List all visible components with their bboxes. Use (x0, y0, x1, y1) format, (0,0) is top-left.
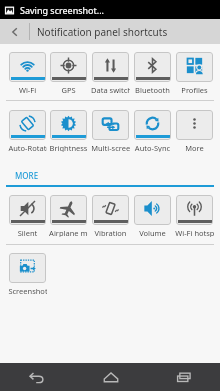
button[interactable]: More (173, 110, 215, 152)
button[interactable]: Airplane mode (48, 195, 89, 237)
staticText: Auto-Sync (133, 143, 172, 152)
button[interactable]: Brightness (48, 110, 89, 152)
staticText: Vibration (91, 228, 130, 237)
button[interactable]: Recents (147, 363, 220, 391)
staticText: GPS (49, 85, 88, 94)
button[interactable]: Bluetooth (131, 52, 173, 94)
button[interactable]: Back (0, 363, 74, 391)
staticText: Airplane mode (49, 228, 88, 237)
button[interactable]: Silent (7, 195, 48, 237)
staticText: MORE (15, 170, 39, 181)
button[interactable]: Data switch (89, 52, 131, 94)
staticText: Data switch (91, 85, 130, 94)
button[interactable]: Auto-Rotate (7, 110, 48, 152)
staticText: Brightness (49, 143, 88, 152)
staticText: Bluetooth (133, 85, 172, 94)
button[interactable]: Multi-screen (89, 110, 131, 152)
staticText: Wi-Fi (8, 85, 47, 94)
staticText: Multi-screen (91, 143, 130, 152)
staticText: Notification panel shortcuts (37, 25, 168, 39)
staticText: More (175, 143, 214, 152)
button[interactable]: Wi-Fi hotspot (173, 195, 215, 237)
staticText: Saving screenshot... (20, 4, 105, 16)
staticText: Screenshot (8, 286, 47, 295)
button[interactable]: Vibration (89, 195, 131, 237)
staticText: Profiles (175, 85, 214, 94)
staticText: Wi-Fi hotspot (175, 228, 214, 237)
button[interactable]: GPS (48, 52, 89, 94)
button[interactable]: Profiles (173, 52, 215, 94)
button[interactable]: Home (74, 363, 147, 391)
staticText: Silent (8, 228, 47, 237)
button[interactable]: Screenshot (7, 253, 48, 295)
button[interactable]: Back (0, 19, 29, 44)
staticText: Auto-Rotate (8, 143, 47, 152)
staticText: Volume (133, 228, 172, 237)
button[interactable]: Wi-Fi (7, 52, 48, 94)
button[interactable]: Auto-Sync (131, 110, 173, 152)
button[interactable]: Volume (131, 195, 173, 237)
